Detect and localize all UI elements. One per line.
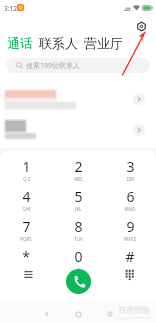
staticText: 联系人 <box>39 35 78 51</box>
staticText: # <box>125 247 135 266</box>
staticText: 1 <box>22 157 31 176</box>
staticText: WXYZ <box>124 236 136 242</box>
button[interactable]: 搜索199位联系人 <box>6 58 150 73</box>
button[interactable]: 3 <box>104 157 156 187</box>
staticText: JKL <box>75 206 82 212</box>
button[interactable]: * <box>0 247 52 277</box>
button[interactable]: 1 <box>0 157 52 187</box>
staticText: PQRS <box>20 236 32 242</box>
button[interactable]: 6 <box>104 187 156 217</box>
button[interactable]: Call <box>66 269 91 294</box>
staticText: * <box>22 247 30 266</box>
button[interactable]: # <box>104 247 156 277</box>
staticText: 2 <box>74 157 83 176</box>
button[interactable]: More <box>0 80 156 110</box>
button[interactable]: Recents <box>101 305 119 323</box>
staticText: 4 <box>22 187 31 206</box>
staticText: MNO <box>124 206 136 212</box>
staticText: . <box>25 266 27 272</box>
staticText: GHI <box>22 206 31 212</box>
staticText: TUV <box>74 236 83 242</box>
button[interactable]: 0 <box>52 247 104 277</box>
button[interactable]: 2 <box>52 157 104 187</box>
staticText: 7 <box>22 217 31 236</box>
button[interactable]: 8 <box>52 217 104 247</box>
staticText: 通话 <box>7 35 33 51</box>
button[interactable]: 联系人 <box>39 35 78 51</box>
button[interactable]: 9 <box>104 217 156 247</box>
staticText: 营业厅 <box>84 35 123 51</box>
button[interactable]: Call log <box>16 262 40 286</box>
button[interactable]: 7 <box>0 217 52 247</box>
staticText: + <box>77 266 80 272</box>
staticText: DEF <box>126 176 135 182</box>
staticText: 3:12 <box>4 4 17 13</box>
button[interactable]: More <box>133 124 145 136</box>
staticText: jingyan.baidu.com <box>116 315 151 320</box>
button[interactable]: Hide keypad <box>117 262 141 286</box>
button[interactable]: 营业厅 <box>84 35 123 51</box>
staticText: 3 <box>126 157 135 176</box>
staticText: 6 <box>126 187 135 206</box>
staticText: Q Z <box>23 176 31 182</box>
button[interactable]: More <box>133 93 145 105</box>
button[interactable]: Home <box>69 305 87 323</box>
staticText: 8 <box>74 217 83 236</box>
staticText: 0 <box>74 247 83 266</box>
button[interactable]: Settings <box>133 18 150 35</box>
staticText: 百度经验 <box>118 305 150 315</box>
staticText: 9 <box>126 217 135 236</box>
button[interactable]: 通话 <box>7 35 33 51</box>
staticText: ABC <box>74 176 83 182</box>
button[interactable]: Back <box>38 305 56 323</box>
button[interactable]: More <box>0 112 156 142</box>
button[interactable]: 4 <box>0 187 52 217</box>
button[interactable]: 5 <box>52 187 104 217</box>
staticText: 5 <box>74 187 83 206</box>
staticText: 搜索199位联系人 <box>26 61 81 71</box>
